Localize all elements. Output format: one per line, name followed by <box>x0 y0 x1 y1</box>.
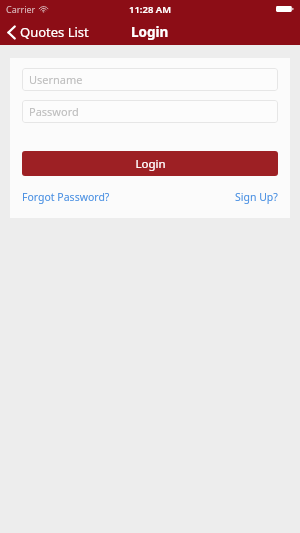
staticText: Login <box>135 156 166 172</box>
staticText: Carrier <box>6 3 36 15</box>
staticText: Password <box>29 104 79 119</box>
staticText: Forgot Password? <box>22 190 110 204</box>
staticText: Sign Up? <box>235 190 278 204</box>
button[interactable]: Quotes List <box>0 20 97 44</box>
button[interactable]: Login <box>22 151 278 176</box>
staticText: Username <box>29 72 83 87</box>
button[interactable]: Forgot Password? <box>22 188 110 206</box>
staticText: Login <box>131 23 169 41</box>
staticText: 11:28 AM <box>129 3 172 16</box>
button[interactable]: Password <box>22 100 278 123</box>
button[interactable]: Username <box>22 68 278 91</box>
button[interactable]: Sign Up? <box>235 188 278 206</box>
staticText: Quotes List <box>20 23 89 41</box>
